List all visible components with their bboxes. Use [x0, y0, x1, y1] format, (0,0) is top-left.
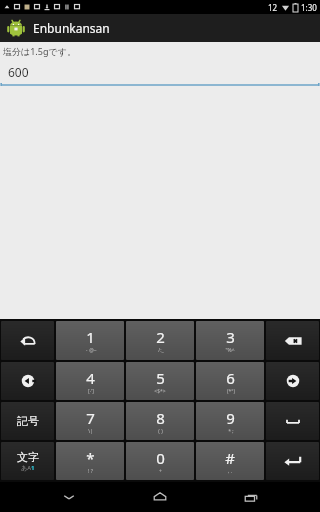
- button[interactable]: 8: [126, 402, 194, 440]
- staticText: /:_: [158, 347, 164, 354]
- button[interactable]: 4: [56, 362, 124, 400]
- button[interactable]: 3: [196, 321, 264, 360]
- button[interactable]: *: [56, 442, 124, 480]
- button[interactable]: Undo: [1, 321, 54, 360]
- staticText: 6: [226, 368, 235, 388]
- staticText: 1: [86, 327, 95, 347]
- button[interactable]: 6: [196, 362, 264, 400]
- staticText: Enbunkansan: [33, 20, 110, 36]
- button[interactable]: 0: [126, 442, 194, 480]
- staticText: [·']: [88, 388, 94, 395]
- staticText: ( ): [158, 428, 163, 435]
- button[interactable]: Enter: [266, 442, 319, 480]
- staticText: #: [225, 448, 235, 468]
- button[interactable]: 1: [56, 321, 124, 360]
- staticText: ! ?: [88, 468, 93, 475]
- button[interactable]: 7: [56, 402, 124, 440]
- staticText: 1: [31, 464, 35, 472]
- staticText: 7: [86, 408, 95, 428]
- button[interactable]: Home: [138, 482, 182, 512]
- staticText: <$*>: [154, 388, 166, 395]
- staticText: , .: [228, 468, 232, 475]
- staticText: 9: [226, 408, 235, 428]
- staticText: 600: [8, 64, 29, 80]
- staticText: 4: [86, 368, 95, 388]
- button[interactable]: Recent apps: [229, 482, 273, 512]
- button[interactable]: Move cursor left: [1, 362, 54, 400]
- staticText: 3: [226, 327, 235, 347]
- button[interactable]: 600: [0, 61, 320, 83]
- staticText: \|: [88, 428, 93, 435]
- button[interactable]: Move cursor right: [266, 362, 319, 400]
- button[interactable]: 5: [126, 362, 194, 400]
- staticText: 文字: [17, 450, 39, 464]
- button[interactable]: Hide keyboard: [47, 482, 91, 512]
- staticText: "%^: [225, 347, 235, 354]
- staticText: (*°): [227, 388, 235, 395]
- button[interactable]: Space: [266, 402, 319, 440]
- button[interactable]: 9: [196, 402, 264, 440]
- button[interactable]: 2: [126, 321, 194, 360]
- staticText: あA: [21, 464, 31, 472]
- staticText: 記号: [17, 414, 39, 428]
- staticText: +: [159, 468, 162, 475]
- button[interactable]: Symbols: [1, 402, 54, 440]
- staticText: *: [86, 448, 95, 468]
- staticText: 8: [156, 408, 165, 428]
- staticText: ・@~: [84, 347, 97, 354]
- staticText: * ;: [228, 428, 234, 435]
- staticText: 塩分は1.5gです。: [3, 45, 76, 57]
- staticText: 1:30: [301, 2, 317, 13]
- button[interactable]: Switch character mode: [1, 442, 54, 480]
- staticText: 12: [268, 2, 278, 13]
- staticText: 2: [156, 327, 165, 347]
- button[interactable]: Backspace: [266, 321, 319, 360]
- staticText: 0: [156, 448, 165, 468]
- staticText: 5: [156, 368, 165, 388]
- button[interactable]: #: [196, 442, 264, 480]
